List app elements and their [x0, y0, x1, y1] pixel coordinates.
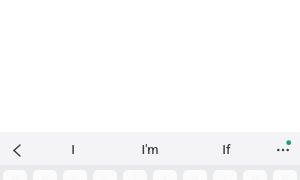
- button[interactable]: Key w: [33, 170, 57, 180]
- staticText: I'm: [141, 142, 159, 157]
- button[interactable]: I'm: [111, 132, 188, 165]
- button[interactable]: Key p: [273, 170, 297, 180]
- button[interactable]: Back: [0, 132, 35, 165]
- button[interactable]: Key o: [243, 170, 267, 180]
- button[interactable]: Key u: [183, 170, 207, 180]
- button[interactable]: Key y: [153, 170, 177, 180]
- button[interactable]: Key e: [63, 170, 87, 180]
- button[interactable]: Key r: [93, 170, 117, 180]
- button[interactable]: If: [188, 132, 265, 165]
- button[interactable]: More options: [265, 132, 300, 165]
- button[interactable]: Key i: [213, 170, 237, 180]
- button[interactable]: Key t: [123, 170, 147, 180]
- button[interactable]: Key q: [3, 170, 27, 180]
- button[interactable]: I: [35, 132, 111, 165]
- staticText: If: [222, 142, 231, 157]
- staticText: I: [71, 142, 75, 157]
